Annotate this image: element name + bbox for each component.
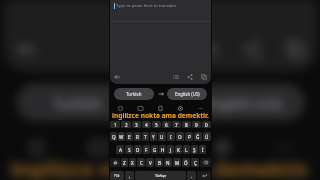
staticText: K — [177, 147, 180, 153]
button[interactable]: 4 — [142, 121, 151, 128]
button[interactable]: Backspace — [200, 158, 211, 167]
button[interactable]: Settings — [177, 105, 184, 112]
staticText: Ö — [184, 160, 188, 166]
button[interactable]: Emoji — [26, 136, 47, 158]
button[interactable]: I — [167, 132, 175, 141]
button[interactable]: L — [183, 145, 190, 154]
button[interactable]: M — [173, 158, 181, 167]
button[interactable]: Ş — [191, 145, 198, 154]
button[interactable]: 7 — [172, 121, 181, 128]
staticText: P — [188, 134, 191, 140]
button[interactable]: History — [171, 72, 181, 82]
button[interactable]: İ — [199, 145, 206, 154]
button[interactable]: Ç — [191, 158, 199, 167]
staticText: M — [175, 160, 180, 166]
button[interactable]: B — [155, 158, 163, 167]
button[interactable]: X — [129, 158, 136, 167]
staticText: ingilizce nokta ama demektir. — [10, 155, 311, 180]
button[interactable]: J — [167, 145, 174, 154]
staticText: İ — [202, 147, 204, 153]
button[interactable]: Copy — [199, 72, 209, 82]
button[interactable]: Ü — [203, 132, 211, 141]
button[interactable]: Listen — [112, 72, 122, 82]
button[interactable]: 2 — [121, 121, 131, 128]
button[interactable]: N — [164, 158, 172, 167]
staticText: L — [185, 147, 188, 153]
staticText: R — [136, 134, 139, 140]
button[interactable]: Turkish — [114, 88, 154, 100]
button[interactable]: 1 — [110, 121, 120, 128]
button[interactable]: More — [197, 105, 204, 112]
staticText: X — [131, 160, 134, 166]
button[interactable]: Y — [150, 132, 157, 141]
staticText: 6 — [165, 122, 168, 128]
button[interactable]: . — [187, 171, 196, 180]
button[interactable]: 9 — [192, 121, 201, 128]
button[interactable]: Turkish — [16, 84, 140, 121]
staticText: 5 — [155, 122, 158, 128]
button[interactable]: 0 — [202, 121, 211, 128]
button[interactable]: Shift — [110, 158, 120, 167]
button[interactable]: 3 — [132, 121, 141, 128]
button[interactable]: Türkçe — [135, 171, 186, 180]
staticText: S — [128, 147, 131, 153]
button[interactable]: Share — [185, 72, 195, 82]
staticText: V — [149, 160, 152, 166]
button[interactable]: English (US) — [167, 88, 207, 100]
button[interactable]: V — [146, 158, 154, 167]
staticText: Ç — [194, 160, 197, 166]
button[interactable]: Settings — [212, 136, 233, 158]
button[interactable]: K — [175, 145, 182, 154]
button[interactable]: Ö — [182, 158, 190, 167]
staticText: Ş — [193, 147, 196, 153]
button[interactable]: 5 — [152, 121, 161, 128]
button[interactable]: 8 — [182, 121, 191, 128]
button[interactable]: Clipboard — [150, 136, 171, 158]
staticText: Q — [112, 134, 116, 140]
staticText: ?1# — [114, 174, 120, 178]
button[interactable]: O — [176, 132, 184, 141]
button[interactable]: Emoji — [117, 105, 124, 112]
button[interactable]: History — [193, 34, 224, 65]
button[interactable]: Clipboard — [157, 105, 164, 112]
staticText: 2 — [125, 122, 128, 128]
button[interactable]: R — [134, 132, 141, 141]
staticText: Y — [152, 134, 155, 140]
button[interactable]: Share — [236, 34, 267, 65]
button[interactable]: T — [142, 132, 149, 141]
staticText: English (US) — [205, 93, 283, 112]
button[interactable]: Listen — [10, 34, 41, 65]
staticText: A — [119, 147, 122, 153]
button[interactable]: C — [137, 158, 145, 167]
button[interactable]: 6 — [162, 121, 171, 128]
button[interactable]: GIF — [137, 105, 144, 112]
button[interactable]: W — [118, 132, 125, 141]
button[interactable]: Ğ — [194, 132, 202, 141]
staticText: D — [136, 147, 140, 153]
staticText: Türkçe — [155, 173, 167, 178]
staticText: G — [153, 147, 157, 153]
button[interactable]: ?1# — [110, 171, 124, 180]
button[interactable]: D — [134, 145, 142, 154]
button[interactable]: F — [143, 145, 150, 154]
staticText: C — [140, 160, 143, 166]
button[interactable]: G — [151, 145, 158, 154]
staticText: 9 — [195, 122, 198, 128]
button[interactable]: Enter — [197, 171, 211, 180]
button[interactable]: S — [125, 145, 133, 154]
button[interactable]: , — [125, 171, 134, 180]
button[interactable]: U — [158, 132, 166, 141]
button[interactable]: P — [185, 132, 193, 141]
button[interactable]: Copy — [280, 34, 311, 65]
staticText: Z — [123, 160, 126, 166]
staticText: 0 — [205, 122, 208, 128]
button[interactable]: Z — [121, 158, 128, 167]
button[interactable]: H — [159, 145, 166, 154]
button[interactable]: E — [126, 132, 133, 141]
button[interactable]: English (US) — [181, 84, 305, 121]
button[interactable]: A — [116, 145, 124, 154]
button[interactable]: GIF — [88, 136, 109, 158]
staticText: Turkish — [126, 91, 142, 97]
button[interactable]: Q — [110, 132, 117, 141]
